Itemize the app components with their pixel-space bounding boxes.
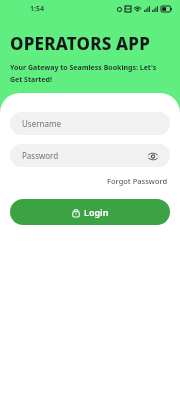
staticText: Your Gateway to Seamless Bookings: Let's… xyxy=(10,63,158,84)
button[interactable]: Forgot Password xyxy=(105,174,170,188)
button[interactable]: Show password xyxy=(146,149,160,163)
staticText: Forgot Password xyxy=(107,176,168,186)
staticText: 1:54 xyxy=(30,4,44,14)
staticText: Password xyxy=(22,150,59,161)
staticText: Login xyxy=(84,206,109,218)
button[interactable]: Password xyxy=(10,144,170,167)
staticText: Username xyxy=(22,118,61,129)
button[interactable]: Login xyxy=(10,199,170,225)
staticText: OPERATORS APP xyxy=(10,32,151,55)
button[interactable]: Username xyxy=(10,112,170,135)
